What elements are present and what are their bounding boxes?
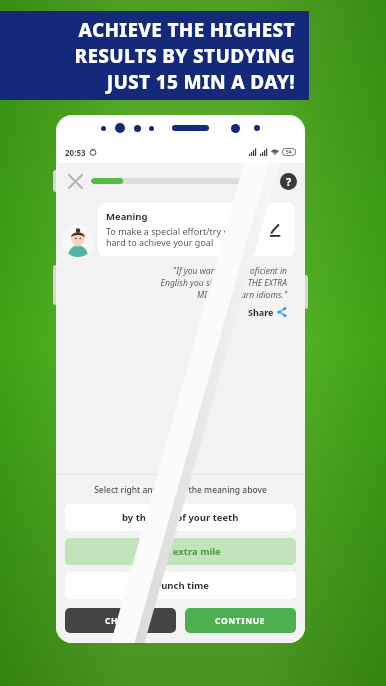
staticText: To make a special effort/try very hard t… xyxy=(106,225,263,249)
staticText: Select right answer for the meaning abov… xyxy=(56,484,305,496)
staticText: "If you want to be proficient in xyxy=(106,265,287,277)
staticText: Share xyxy=(248,306,274,318)
staticText: JUST 15 MIN A DAY! xyxy=(14,69,295,95)
button[interactable]: go the extra mile xyxy=(65,538,296,565)
button[interactable]: Close xyxy=(64,170,86,192)
button[interactable]: Help xyxy=(280,173,297,190)
button[interactable]: CHECK xyxy=(65,608,176,633)
staticText: Meaning xyxy=(106,210,148,223)
button[interactable]: Edit xyxy=(263,218,287,242)
button[interactable]: crunch time xyxy=(65,572,296,599)
staticText: CHECK xyxy=(105,615,136,627)
button[interactable]: CONTINUE xyxy=(185,608,296,633)
staticText: 54 xyxy=(286,149,292,156)
staticText: go the extra mile xyxy=(140,545,221,558)
staticText: ACHIEVE THE HIGHEST xyxy=(14,17,295,43)
staticText: CONTINUE xyxy=(215,615,266,627)
button[interactable]: Share xyxy=(248,306,287,318)
button[interactable]: by the skin of your teeth xyxy=(65,504,296,531)
staticText: RESULTS BY STUDYING xyxy=(14,43,295,69)
staticText: by the skin of your teeth xyxy=(122,511,239,524)
staticText: crunch time xyxy=(152,579,209,592)
staticText: ? xyxy=(286,174,292,189)
staticText: 20:53 xyxy=(65,147,86,158)
staticText: English you should GO THE EXTRA xyxy=(106,277,287,289)
staticText: MILE and learn idioms." xyxy=(106,289,287,301)
